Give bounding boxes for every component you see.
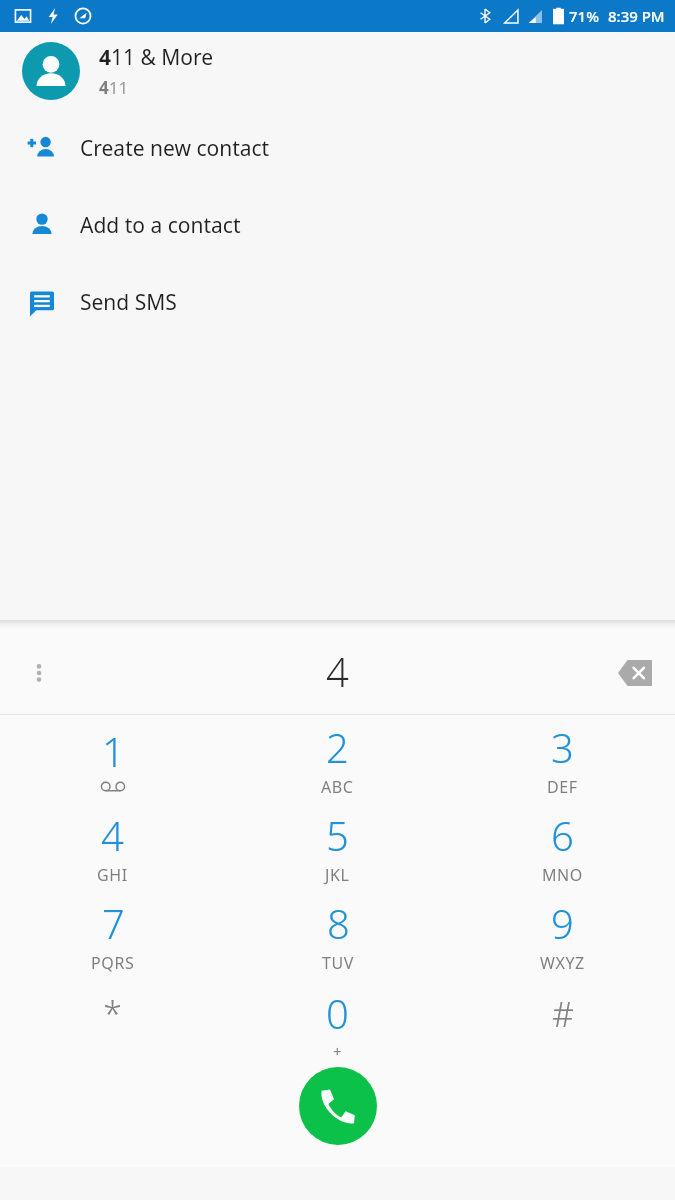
- button[interactable]: Backspace: [609, 647, 661, 699]
- staticText: TUV: [322, 952, 354, 974]
- staticText: 411: [99, 76, 129, 99]
- staticText: JKL: [325, 864, 350, 886]
- button[interactable]: 8: [225, 891, 450, 979]
- staticText: *: [103, 991, 122, 1037]
- staticText: PQRS: [91, 952, 135, 974]
- button[interactable]: 9: [450, 891, 675, 979]
- staticText: 7: [102, 896, 125, 950]
- staticText: #: [552, 991, 574, 1037]
- staticText: 71%: [569, 6, 599, 26]
- staticText: 0: [326, 986, 349, 1040]
- button[interactable]: 5: [225, 803, 450, 891]
- staticText: 1: [102, 724, 125, 778]
- staticText: 8: [327, 896, 350, 950]
- button[interactable]: 2: [225, 715, 450, 803]
- staticText: 9: [551, 896, 574, 950]
- staticText: 8:39 PM: [608, 6, 665, 26]
- button[interactable]: 4: [0, 803, 225, 891]
- staticText: 411 & More: [99, 43, 214, 72]
- staticText: Create new contact: [80, 134, 270, 163]
- button[interactable]: 0: [225, 979, 450, 1067]
- button[interactable]: Add to a contact: [0, 187, 675, 264]
- staticText: 6: [551, 808, 574, 862]
- staticText: 4: [326, 644, 349, 698]
- button[interactable]: 411 & More: [0, 32, 675, 110]
- staticText: GHI: [97, 864, 128, 886]
- staticText: Send SMS: [80, 288, 177, 317]
- staticText: ABC: [321, 776, 354, 798]
- staticText: WXYZ: [540, 952, 585, 974]
- staticText: MNO: [542, 864, 583, 886]
- button[interactable]: 3: [450, 715, 675, 803]
- staticText: DEF: [547, 776, 578, 798]
- button[interactable]: 6: [450, 803, 675, 891]
- button[interactable]: 7: [0, 891, 225, 979]
- staticText: 4: [101, 808, 124, 862]
- button[interactable]: Call: [299, 1067, 377, 1145]
- button[interactable]: 1: [0, 715, 225, 803]
- button[interactable]: #: [450, 979, 675, 1067]
- staticText: +: [333, 1041, 343, 1061]
- button[interactable]: *: [0, 979, 225, 1067]
- button[interactable]: More options: [14, 648, 64, 698]
- staticText: 2: [326, 720, 349, 774]
- staticText: 3: [551, 720, 574, 774]
- button[interactable]: Create new contact: [0, 110, 675, 187]
- staticText: Add to a contact: [80, 211, 241, 240]
- staticText: 5: [326, 808, 349, 862]
- button[interactable]: Send SMS: [0, 264, 675, 341]
